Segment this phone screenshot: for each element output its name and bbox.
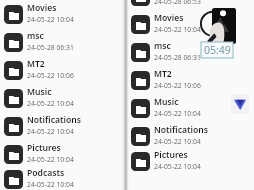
button[interactable]: Music: [0, 84, 122, 112]
staticText: msc: [154, 40, 171, 52]
staticText: Movies: [154, 12, 184, 24]
staticText: 24-05-22 10:04: [154, 162, 201, 171]
staticText: 05:49: [204, 43, 231, 57]
staticText: 24-05-28 06:53: [154, 0, 201, 6]
staticText: Movies: [27, 2, 57, 14]
staticText: 24-05-22 10:04: [27, 99, 74, 108]
staticText: 24-05-22 10:04: [27, 155, 74, 164]
button[interactable]: 05:49: [201, 42, 233, 58]
staticText: Pictures: [27, 142, 61, 154]
staticText: Podcasts: [27, 167, 65, 179]
staticText: msc: [27, 30, 44, 42]
staticText: 24-05-28 06:31: [27, 43, 74, 52]
staticText: 24-05-22 10:06: [154, 81, 201, 90]
staticText: Music: [154, 96, 179, 108]
staticText: 24-05-22 10:04: [27, 180, 74, 189]
staticText: MT2: [27, 58, 45, 70]
button[interactable]: Notifications: [0, 112, 122, 140]
button[interactable]: msc: [127, 38, 254, 66]
button[interactable]: Notifications: [127, 122, 254, 150]
staticText: 24-05-22 10:04: [154, 109, 201, 118]
staticText: MT2: [154, 68, 172, 80]
staticText: 24-05-22 10:04: [154, 25, 201, 34]
staticText: Pictures: [154, 149, 188, 161]
button[interactable]: Pictures: [127, 150, 254, 172]
button[interactable]: Movies: [127, 10, 254, 38]
button[interactable]: App shortcut: [231, 94, 249, 114]
button[interactable]: Download: [127, 0, 254, 10]
button[interactable]: Pictures: [0, 140, 122, 168]
staticText: Music: [27, 86, 52, 98]
staticText: 24-05-22 10:04: [27, 127, 74, 136]
button[interactable]: Movies: [0, 0, 122, 28]
staticText: 24-05-28 06:31: [154, 53, 201, 62]
staticText: 24-05-22 10:04: [154, 137, 201, 146]
button[interactable]: msc: [0, 28, 122, 56]
staticText: Notifications: [27, 114, 81, 126]
button[interactable]: Music: [127, 94, 254, 122]
button[interactable]: MT2: [0, 56, 122, 84]
staticText: 24-05-22 10:04: [27, 15, 74, 24]
button[interactable]: Podcasts: [0, 168, 122, 190]
button[interactable]: Picture in picture video: [200, 8, 236, 44]
staticText: Notifications: [154, 124, 208, 136]
button[interactable]: MT2: [127, 66, 254, 94]
staticText: 24-05-22 10:06: [27, 71, 74, 80]
